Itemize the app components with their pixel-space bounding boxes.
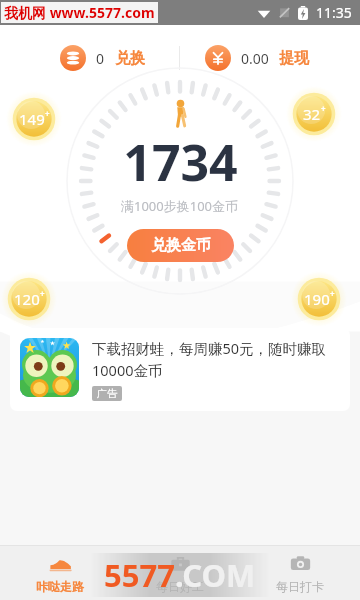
staticText: + <box>330 288 335 299</box>
button[interactable]: 兑换金币 <box>127 229 234 262</box>
staticText: 149 <box>19 109 45 129</box>
button[interactable]: 0.00 <box>180 38 334 78</box>
button[interactable]: Collect 149 coins <box>6 91 62 147</box>
staticText: 11:35 <box>316 3 352 22</box>
button[interactable]: Collect 32 coins <box>286 86 342 142</box>
button[interactable]: 每日打卡 <box>240 545 360 600</box>
staticText: 32 <box>303 104 321 124</box>
staticText: 满1000步换100金币 <box>121 197 239 215</box>
button[interactable]: Collect 190 coins <box>291 271 347 327</box>
staticText: 5577 <box>104 554 175 596</box>
staticText: 兑换金币 <box>151 236 211 255</box>
staticText: 兑换 <box>115 49 145 68</box>
staticText: + <box>45 108 50 119</box>
staticText: 120 <box>14 289 40 309</box>
staticText: 下载招财蛙，每周赚50元，随时赚取10000金币 <box>92 338 340 381</box>
staticText: 190 <box>304 289 330 309</box>
button[interactable]: 每日好工 <box>120 545 240 600</box>
other: 招财蛙 app icon <box>20 338 79 397</box>
button[interactable]: 咔哒走路 <box>0 545 120 600</box>
staticText: 咔哒走路 <box>36 579 84 594</box>
staticText: .COM <box>175 554 256 596</box>
staticText: 提现 <box>279 49 309 68</box>
staticText: 每日打卡 <box>276 579 324 594</box>
button[interactable]: Collect 120 coins <box>1 271 57 327</box>
staticText: + <box>321 103 326 114</box>
staticText: 0.00 <box>241 49 269 68</box>
button[interactable]: 招财蛙 app icon <box>10 328 350 411</box>
staticText: 我机网 www.5577.com <box>4 3 155 22</box>
staticText: 广告 <box>97 387 117 400</box>
staticText: 1734 <box>123 128 238 196</box>
staticText: 0 <box>96 49 105 68</box>
staticText: 每日好工 <box>156 579 204 594</box>
staticText: + <box>40 288 45 299</box>
button[interactable]: 0 <box>26 38 179 78</box>
